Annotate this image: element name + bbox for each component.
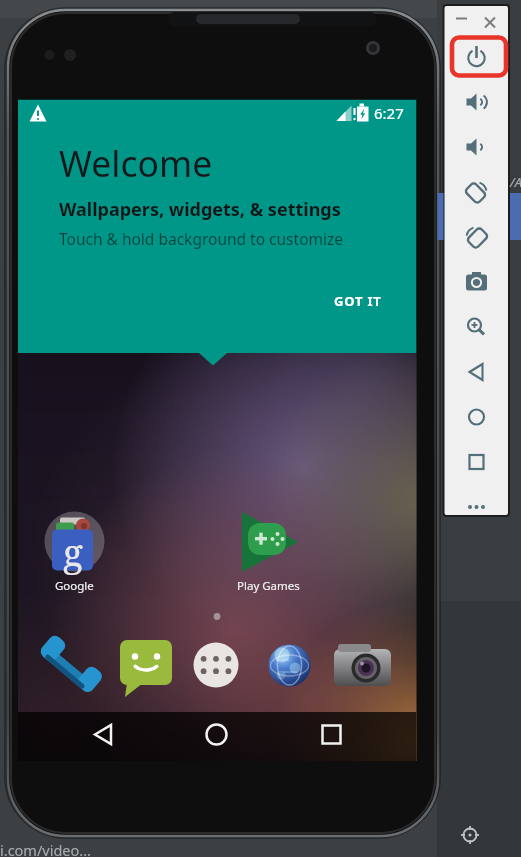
- staticText: /A: [510, 173, 521, 191]
- button[interactable]: [458, 219, 495, 255]
- button[interactable]: [458, 264, 495, 300]
- button[interactable]: [77, 712, 129, 761]
- staticText: 6:27: [374, 103, 404, 123]
- button[interactable]: [458, 309, 495, 345]
- button[interactable]: [458, 444, 495, 480]
- button[interactable]: [306, 712, 358, 761]
- button[interactable]: [458, 39, 495, 75]
- staticText: Google: [55, 578, 94, 594]
- button[interactable]: [121, 641, 171, 691]
- button[interactable]: [339, 641, 389, 691]
- button[interactable]: [458, 129, 495, 165]
- button[interactable]: [458, 354, 495, 390]
- button[interactable]: [191, 712, 243, 761]
- staticText: GOT IT: [334, 292, 382, 310]
- button[interactable]: [238, 511, 298, 593]
- button[interactable]: [458, 84, 495, 120]
- button[interactable]: [45, 641, 95, 691]
- button[interactable]: [458, 489, 495, 525]
- staticText: i.com/video...: [0, 840, 91, 857]
- button[interactable]: [265, 641, 315, 691]
- button[interactable]: [458, 399, 495, 435]
- button[interactable]: [191, 641, 241, 691]
- staticText: Wallpapers, widgets, & settings: [59, 197, 341, 222]
- staticText: g: [63, 526, 83, 576]
- button[interactable]: [481, 10, 499, 26]
- button[interactable]: [458, 174, 495, 210]
- staticText: Touch & hold background to customize: [59, 228, 344, 249]
- button[interactable]: [452, 10, 470, 26]
- button[interactable]: [45, 511, 105, 593]
- button[interactable]: GOT IT: [322, 285, 390, 315]
- staticText: Welcome: [59, 139, 213, 187]
- staticText: Play Games: [237, 578, 300, 594]
